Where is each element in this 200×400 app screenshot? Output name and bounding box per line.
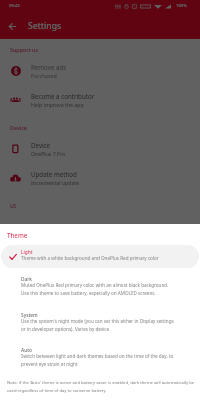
button[interactable]: Back bbox=[0, 12, 25, 39]
staticText: Remove ads bbox=[31, 63, 67, 71]
staticText: Become a contributor bbox=[31, 92, 95, 100]
staticText: Purchased bbox=[31, 72, 57, 79]
staticText: Use the system's night mode (you can set… bbox=[21, 318, 174, 324]
staticText: Switch between light and dark themes bas… bbox=[21, 353, 174, 359]
button[interactable]: Become a contributor bbox=[0, 85, 200, 114]
staticText: UI bbox=[10, 202, 16, 209]
staticText: OnePlus 7 Pro bbox=[31, 150, 66, 157]
staticText: System bbox=[21, 312, 38, 319]
staticText: Help improve the app bbox=[31, 101, 84, 108]
staticText: Dark bbox=[21, 276, 32, 283]
staticText: Note: if the 'Auto' theme is active and … bbox=[7, 380, 195, 386]
staticText: 100% bbox=[176, 3, 187, 9]
staticText: or in developer options). Varies by devi… bbox=[21, 326, 110, 332]
staticText: Settings bbox=[28, 20, 62, 32]
button[interactable]: Light bbox=[1, 245, 199, 268]
staticText: Update method bbox=[31, 170, 77, 178]
staticText: Device bbox=[10, 124, 27, 131]
button[interactable]: System bbox=[1, 308, 199, 338]
staticText: Muted OnePlus Red primary color, with an… bbox=[21, 282, 169, 288]
button[interactable]: Auto bbox=[1, 343, 199, 373]
staticText: Device bbox=[31, 141, 51, 149]
staticText: Theme with a white background and OnePlu… bbox=[21, 255, 159, 261]
button[interactable]: Remove ads bbox=[0, 56, 200, 85]
staticText: Incremental update bbox=[31, 179, 80, 186]
button[interactable]: Update method bbox=[0, 163, 200, 192]
button[interactable]: Dark bbox=[1, 272, 199, 302]
staticText: 09:42 bbox=[9, 3, 20, 9]
staticText: Support us bbox=[10, 46, 39, 53]
staticText: prevent eye strain at night bbox=[21, 361, 78, 367]
button[interactable]: Device bbox=[0, 134, 200, 163]
staticText: used regardless of time of day to conser… bbox=[7, 388, 106, 394]
staticText: Light bbox=[21, 249, 33, 256]
staticText: Auto bbox=[21, 347, 32, 354]
staticText: Theme bbox=[7, 231, 28, 239]
staticText: Use this theme to save battery, especial… bbox=[21, 290, 156, 296]
